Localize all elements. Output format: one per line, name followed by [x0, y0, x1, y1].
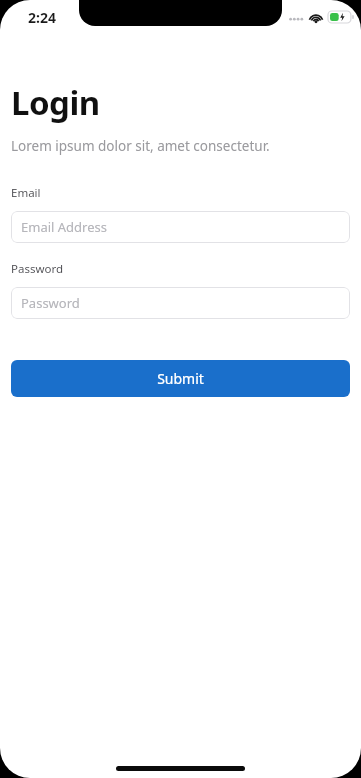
staticText: Lorem ipsum dolor sit, amet consectetur.	[11, 137, 270, 155]
staticText: Login	[11, 80, 100, 125]
button[interactable]: Password	[11, 287, 350, 319]
staticText: Password	[11, 261, 64, 277]
staticText: Email	[11, 185, 41, 201]
button[interactable]: Email Address	[11, 211, 350, 243]
staticText: Submit	[157, 369, 204, 388]
staticText: 2:24	[28, 8, 56, 27]
staticText: Password	[21, 294, 80, 312]
button[interactable]: Submit	[11, 360, 350, 397]
staticText: Email Address	[21, 218, 107, 236]
